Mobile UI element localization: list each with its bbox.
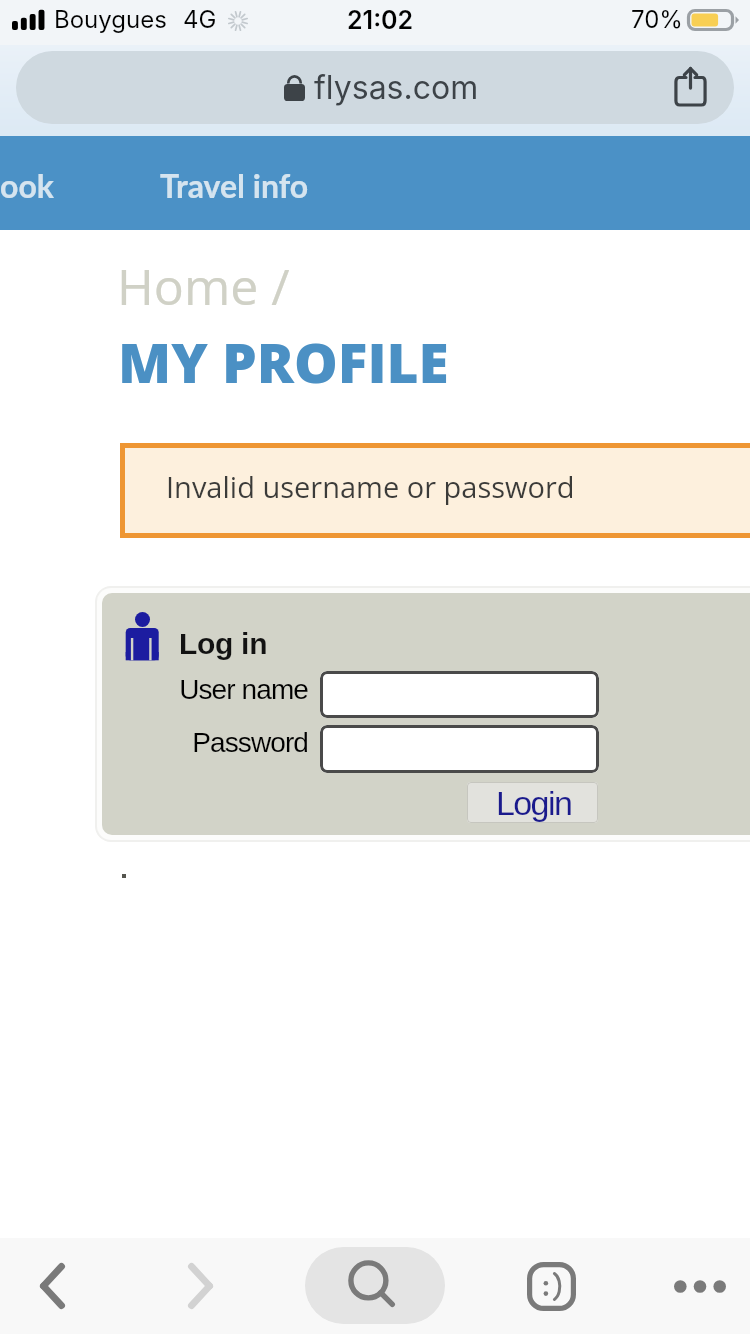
staticText: Travel info [160,166,309,204]
staticText: User name [102,674,308,705]
button[interactable]: ook [0,163,68,207]
staticText: MY PROFILE [118,324,449,399]
button[interactable]: Login [467,782,598,823]
button[interactable]: Back [28,1257,77,1315]
button[interactable]: Travel info [146,163,323,207]
staticText: Password [102,727,308,758]
staticText: 21:02 [347,5,414,35]
button[interactable] [320,671,599,718]
button[interactable]: Search [305,1247,445,1324]
staticText: flysas.com [314,68,479,107]
button[interactable]: Bookmarks [515,1251,585,1321]
button[interactable]: flysas.com [16,51,734,124]
staticText: Login [496,784,572,822]
staticText: 70% [631,5,683,34]
staticText: Bouygues [54,5,167,34]
staticText: Invalid username or password [166,467,575,506]
button[interactable]: Share [662,57,718,113]
staticText: Home / [117,252,290,320]
staticText: Log in [179,627,268,661]
staticText: ook [0,166,54,204]
button[interactable]: Forward [176,1257,225,1315]
button[interactable] [320,725,599,773]
staticText: 4G [183,5,217,34]
button[interactable]: More [663,1251,733,1321]
